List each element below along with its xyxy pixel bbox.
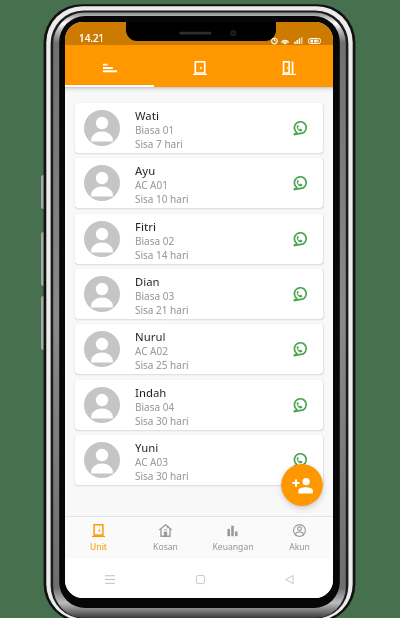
button[interactable]: Chat WhatsApp xyxy=(282,277,316,311)
button[interactable]: Unit kosong xyxy=(244,47,333,89)
staticText: Fitri xyxy=(135,219,156,234)
button[interactable]: Tambah penyewa xyxy=(281,464,323,506)
staticText: Biasa 03 xyxy=(135,289,175,303)
staticText: Yuni xyxy=(135,440,159,455)
button[interactable]: Recents xyxy=(100,569,120,589)
staticText: AC A02 xyxy=(135,344,168,358)
staticText: AC A03 xyxy=(135,455,168,469)
staticText: Dian xyxy=(135,274,160,289)
staticText: Nurul xyxy=(135,329,166,344)
staticText: Akun xyxy=(289,541,310,553)
button[interactable]: Chat WhatsApp xyxy=(282,332,316,366)
button[interactable]: Yuni xyxy=(75,435,323,485)
staticText: Sisa 14 hari xyxy=(135,248,189,262)
staticText: Biasa 04 xyxy=(135,400,175,414)
button[interactable]: Back xyxy=(279,569,299,589)
button[interactable]: Unit xyxy=(65,517,132,559)
button[interactable]: Home xyxy=(190,569,210,589)
button[interactable]: Ayu xyxy=(75,158,323,208)
staticText: Kosan xyxy=(153,541,178,553)
staticText: Sisa 21 hari xyxy=(135,303,189,317)
staticText: Sisa 30 hari xyxy=(135,414,189,428)
button[interactable]: Chat WhatsApp xyxy=(282,166,316,200)
staticText: Biasa 02 xyxy=(135,234,175,248)
button[interactable]: Nurul xyxy=(75,324,323,374)
button[interactable]: Fitri xyxy=(75,214,323,264)
staticText: AC A01 xyxy=(135,178,168,192)
staticText: Ayu xyxy=(135,163,156,178)
button[interactable]: Semua unit xyxy=(65,47,155,89)
staticText: Keuangan xyxy=(212,541,254,553)
button[interactable]: Chat WhatsApp xyxy=(282,222,316,256)
staticText: Biasa 01 xyxy=(135,123,175,137)
staticText: Sisa 25 hari xyxy=(135,358,189,372)
button[interactable]: Unit terisi xyxy=(155,47,244,89)
staticText: Sisa 30 hari xyxy=(135,469,189,483)
staticText: Sisa 10 hari xyxy=(135,192,189,206)
button[interactable]: Chat WhatsApp xyxy=(282,443,316,477)
staticText: Sisa 7 hari xyxy=(135,137,183,151)
button[interactable]: Akun xyxy=(266,517,333,559)
button[interactable]: Kosan xyxy=(132,517,199,559)
button[interactable]: Wati xyxy=(75,103,323,153)
staticText: Unit xyxy=(90,541,107,553)
staticText: 14.21 xyxy=(79,31,105,44)
button[interactable]: Chat WhatsApp xyxy=(282,111,316,145)
button[interactable]: Keuangan xyxy=(199,517,266,559)
button[interactable]: Chat WhatsApp xyxy=(282,388,316,422)
staticText: Wati xyxy=(135,108,160,123)
button[interactable]: Indah xyxy=(75,380,323,430)
button[interactable]: Dian xyxy=(75,269,323,319)
staticText: Indah xyxy=(135,385,167,400)
